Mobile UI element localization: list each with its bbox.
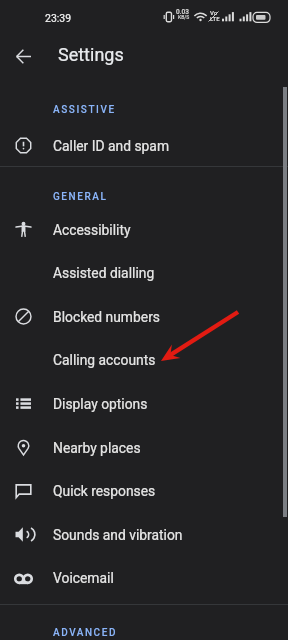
button[interactable]: Nearby places (0, 426, 288, 469)
staticText: KB/S (178, 14, 190, 20)
staticText: Display options (53, 396, 148, 412)
staticText: Quick responses (53, 483, 156, 499)
staticText: ASSISTIVE (53, 104, 116, 116)
button[interactable]: Display options (0, 382, 288, 425)
staticText: GENERAL (53, 191, 108, 203)
staticText: Sounds and vibration (53, 527, 183, 543)
staticText: Settings (58, 44, 124, 65)
staticText: Assisted dialling (53, 265, 155, 281)
staticText: ADVANCED (53, 627, 117, 639)
staticText: 23:39 (45, 12, 72, 24)
staticText: 0.03 (176, 8, 189, 16)
staticText: Blocked numbers (53, 309, 160, 325)
button[interactable]: Assisted dialling (0, 251, 288, 294)
staticText: Calling accounts (53, 352, 156, 368)
button[interactable]: Caller ID and spam (0, 124, 288, 167)
button[interactable]: Quick responses (0, 469, 288, 512)
button[interactable]: Sounds and vibration (0, 513, 288, 556)
button[interactable]: Blocked numbers (0, 295, 288, 338)
staticText: Voicemail (53, 570, 114, 586)
button[interactable]: Accessibility (0, 208, 288, 251)
staticText: Accessibility (53, 222, 131, 238)
staticText: LTE (210, 15, 220, 22)
staticText: Caller ID and spam (53, 138, 170, 154)
button[interactable]: Back (3, 36, 43, 76)
staticText: Nearby places (53, 440, 141, 456)
button[interactable]: Voicemail (0, 556, 288, 599)
staticText: Vo (210, 9, 218, 16)
button[interactable]: Calling accounts (0, 338, 288, 381)
